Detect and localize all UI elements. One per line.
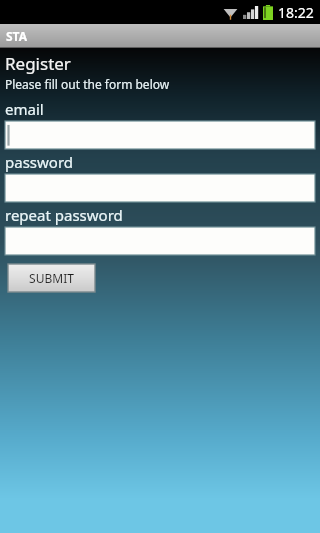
staticText: 18:22 [278,3,314,22]
staticText: SUBMIT [29,270,74,286]
staticText: password [5,152,73,172]
staticText: repeat password [5,205,123,225]
button[interactable]: SUBMIT [8,264,95,292]
staticText: email [5,99,44,119]
staticText: Please fill out the form below [5,76,170,92]
button[interactable] [5,227,315,255]
staticText: STA [6,28,28,44]
staticText: Register [5,52,71,75]
button[interactable] [5,174,315,202]
button[interactable] [5,121,315,149]
